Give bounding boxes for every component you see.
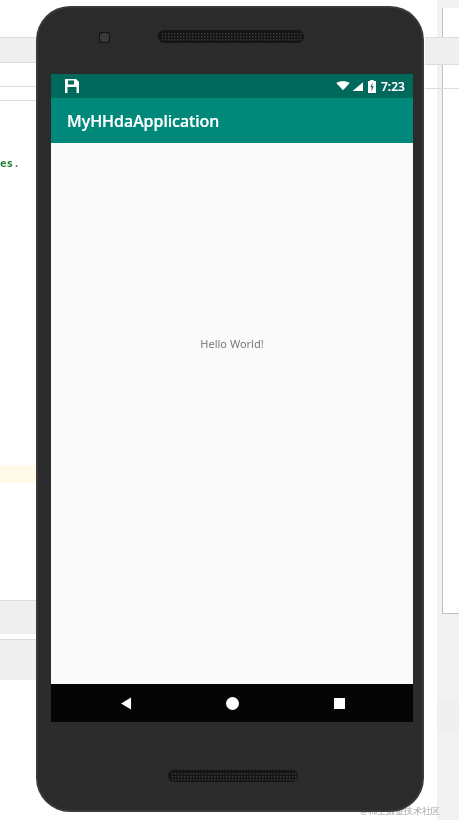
button[interactable]: Home bbox=[200, 684, 264, 722]
staticText: @稀土掘金技术社区 bbox=[360, 804, 441, 816]
button[interactable]: MyHHdaApplication bbox=[51, 98, 413, 143]
staticText: 7:23 bbox=[381, 78, 405, 94]
staticText: Hello World! bbox=[200, 336, 264, 351]
button[interactable]: Recents bbox=[307, 684, 371, 722]
staticText: es. bbox=[0, 155, 20, 170]
button[interactable]: Back bbox=[94, 684, 158, 722]
staticText: MyHHdaApplication bbox=[67, 110, 220, 132]
